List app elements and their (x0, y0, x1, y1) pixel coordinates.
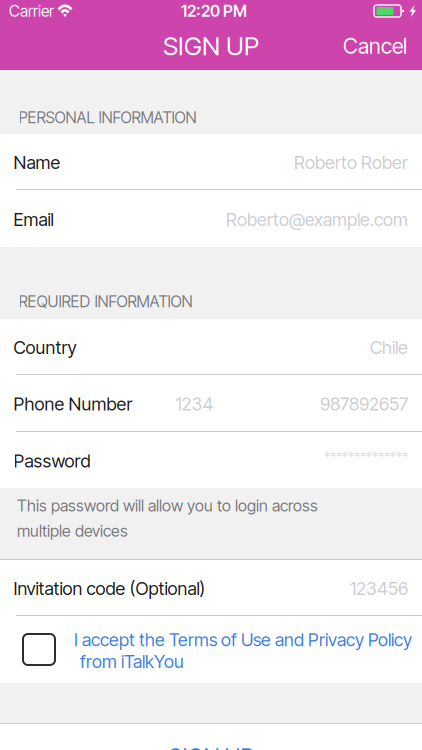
staticText: from iTalkYou (80, 651, 184, 672)
staticText: This password will allow you to login ac… (17, 496, 318, 515)
staticText: ************** (324, 449, 408, 466)
staticText: SIGN UP (163, 30, 259, 61)
button[interactable]: Phone Number (0, 375, 422, 431)
staticText: SIGN UP (168, 743, 253, 750)
staticText: REQUIRED INFORMATION (18, 292, 192, 311)
staticText: Invitation code (Optional) (13, 578, 205, 599)
staticText: Password (13, 450, 90, 472)
staticText: 987892657 (320, 393, 408, 415)
staticText: multiple devices (17, 521, 128, 541)
staticText: Email (13, 209, 53, 230)
button[interactable]: Password (0, 432, 422, 488)
button[interactable]: Name (0, 134, 422, 189)
staticText: PERSONAL INFORMATION (18, 108, 196, 127)
staticText: Roberto@example.com (226, 209, 408, 230)
staticText: Roberto Rober (294, 152, 408, 173)
staticText: Name (13, 152, 60, 173)
staticText: 1234 (175, 393, 213, 415)
staticText: 123456 (350, 578, 408, 599)
staticText: Carrier (9, 1, 54, 20)
staticText: Phone Number (13, 393, 132, 415)
button[interactable]: SIGN UP (0, 724, 422, 750)
button[interactable]: Email (0, 190, 422, 247)
button[interactable]: Cancel (329, 22, 422, 70)
button[interactable]: Invitation code (Optional) (0, 560, 422, 615)
button[interactable]: Country (0, 319, 422, 374)
staticText: 12:20 PM (181, 1, 247, 21)
staticText: Country (13, 337, 76, 358)
staticText: Cancel (343, 33, 407, 59)
staticText: Chile (370, 337, 408, 358)
button[interactable]: I accept the Terms of Use and Privacy Po… (0, 616, 422, 683)
staticText: I accept the Terms of Use and Privacy Po… (74, 629, 412, 651)
